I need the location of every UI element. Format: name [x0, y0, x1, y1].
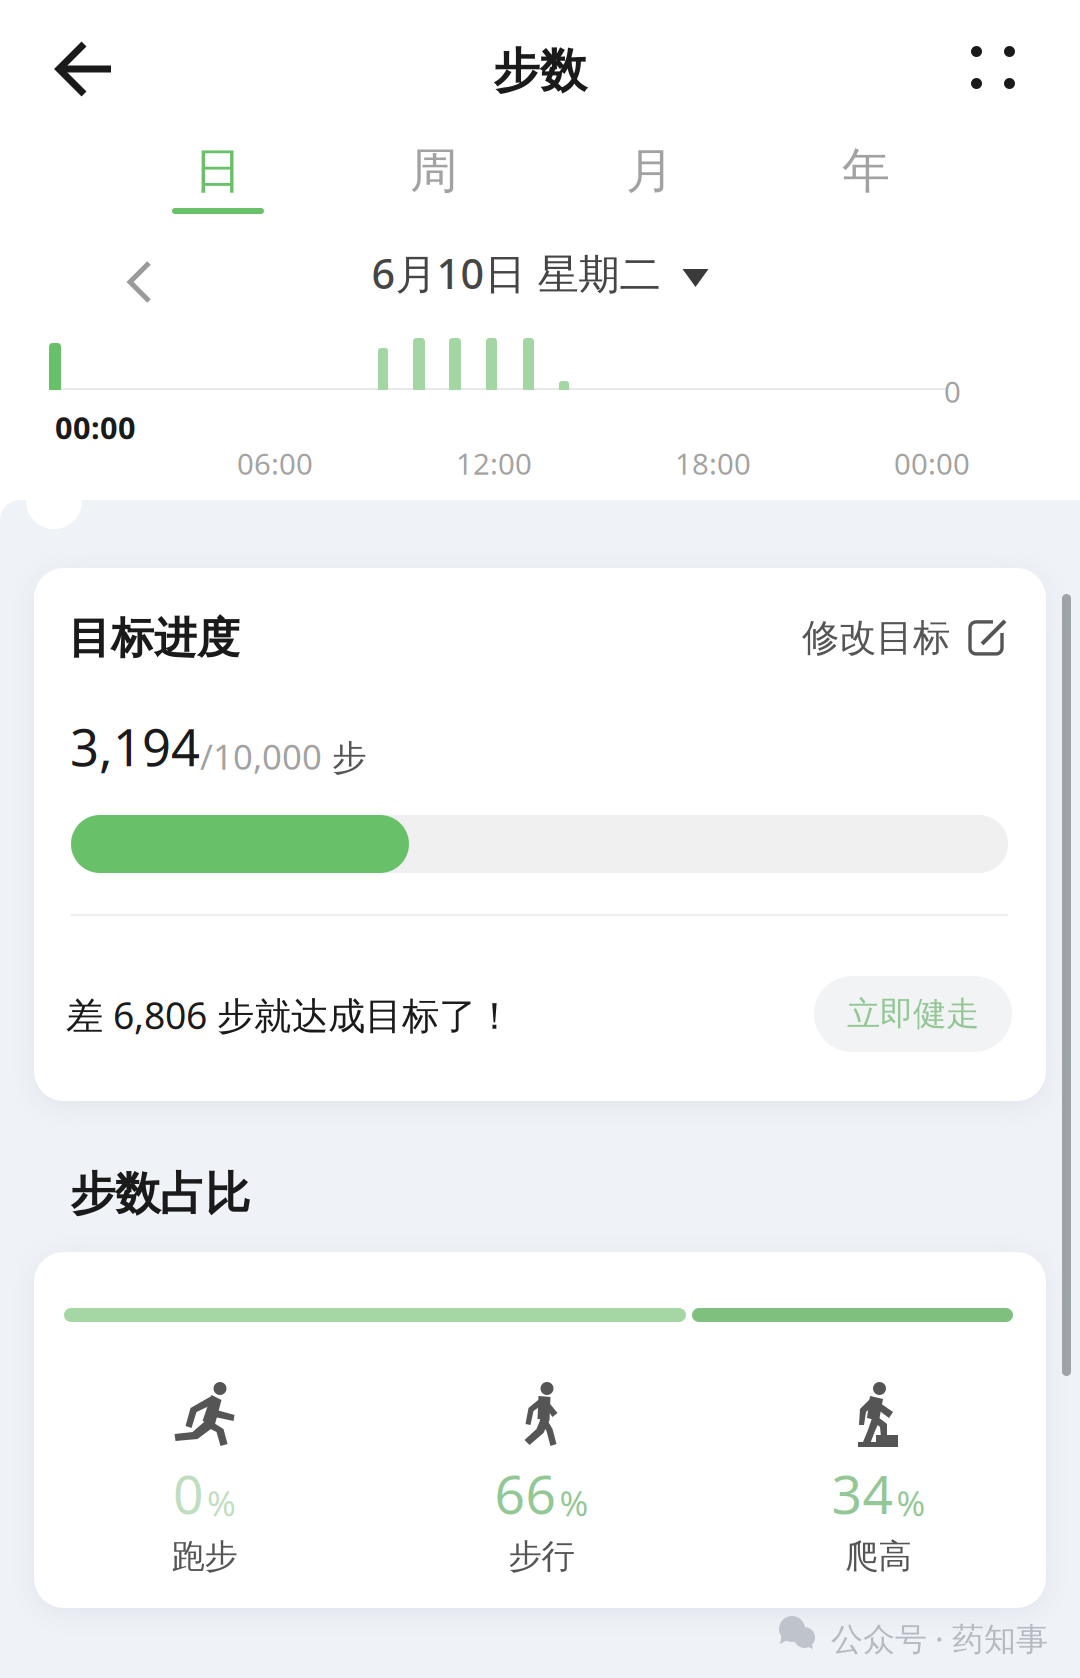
staticText: 6月10日 星期二 [371, 246, 660, 300]
staticText: 步数 [493, 42, 587, 100]
staticText: 目标进度 [68, 612, 240, 664]
staticText: 06:00 [237, 444, 313, 483]
staticText: 步行 [508, 1536, 574, 1577]
staticText: 修改目标 [802, 615, 950, 661]
staticText: 18:00 [675, 444, 751, 483]
button[interactable]: 周 [326, 130, 542, 218]
staticText: 34 [831, 1458, 893, 1529]
staticText: 差 6,806 步就达成目标了！ [66, 990, 513, 1040]
button[interactable]: 更多 [971, 46, 1015, 89]
staticText: 立即健走 [847, 993, 979, 1034]
button[interactable]: 前一天 [110, 254, 170, 310]
staticText: 00:00 [894, 444, 970, 483]
button[interactable]: 立即健走 [814, 976, 1012, 1052]
staticText: 66 [494, 1458, 556, 1529]
staticText: 公众号 · 药知事 [831, 1617, 1048, 1659]
staticText: 00:00 [55, 407, 136, 448]
staticText: 3,194 [70, 713, 200, 780]
staticText: 步数占比 [70, 1166, 250, 1222]
staticText: 年 [842, 141, 890, 200]
button[interactable]: 年 [758, 130, 974, 218]
staticText: 月 [626, 141, 674, 200]
staticText: % [896, 1480, 925, 1526]
staticText: 步 [322, 737, 367, 779]
button[interactable]: 日 [110, 130, 326, 218]
button[interactable]: 返回 [55, 40, 115, 98]
staticText: 12:00 [456, 444, 532, 483]
staticText: 日 [194, 141, 242, 200]
staticText: 0 [173, 1458, 204, 1529]
staticText: % [207, 1480, 236, 1526]
staticText: 周 [410, 141, 458, 200]
staticText: 跑步 [171, 1536, 237, 1577]
staticText: % [559, 1480, 588, 1526]
staticText: 爬高 [845, 1536, 911, 1577]
button[interactable]: 月 [542, 130, 758, 218]
staticText: 0 [944, 372, 961, 411]
button[interactable]: 修改目标 [802, 615, 1008, 661]
staticText: /10,000 [200, 733, 322, 779]
